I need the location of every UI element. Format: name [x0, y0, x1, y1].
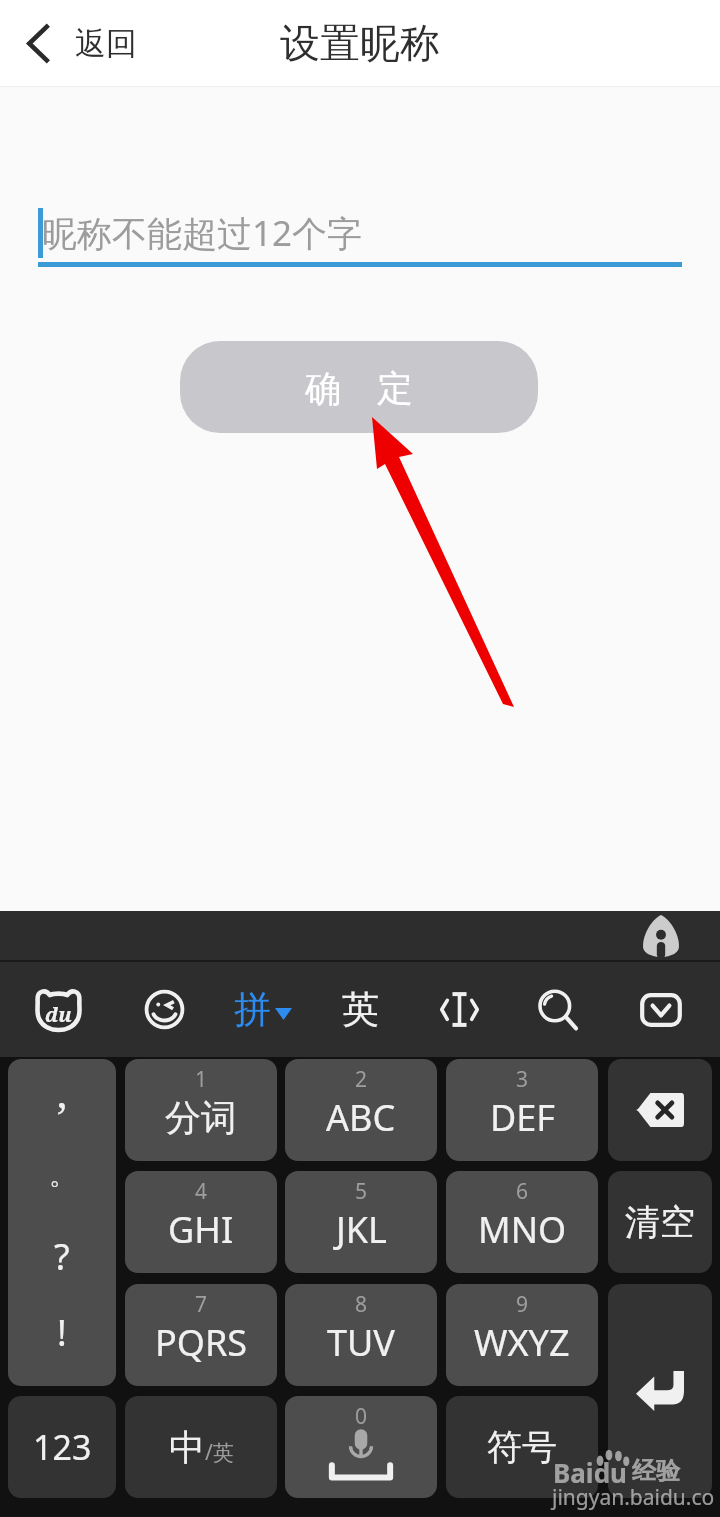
- button[interactable]: Move cursor: [411, 962, 507, 1057]
- staticText: 设置昵称: [280, 18, 440, 68]
- staticText: 确 定: [305, 363, 413, 412]
- staticText: WXYZ: [474, 1318, 570, 1367]
- button[interactable]: 确 定: [180, 341, 538, 433]
- staticText: 清空: [625, 1200, 695, 1244]
- button[interactable]: 1: [125, 1059, 277, 1161]
- staticText: 。: [49, 1159, 75, 1192]
- button[interactable]: 清空: [608, 1171, 712, 1273]
- button[interactable]: 8: [285, 1284, 437, 1386]
- staticText: jingyan.baidu.com: [552, 1483, 720, 1517]
- staticText: ABC: [326, 1093, 396, 1142]
- staticText: du: [45, 1001, 72, 1028]
- button[interactable]: Punctuation: [8, 1059, 116, 1386]
- staticText: 分词: [165, 1095, 237, 1140]
- button[interactable]: 7: [125, 1284, 277, 1386]
- button[interactable]: 英: [312, 962, 408, 1057]
- staticText: 2: [355, 1065, 368, 1094]
- staticText: 7: [195, 1290, 208, 1319]
- staticText: PQRS: [155, 1318, 248, 1367]
- staticText: 返回: [75, 24, 137, 63]
- button[interactable]: 昵称不能超过12个字: [38, 194, 682, 272]
- button[interactable]: Search: [510, 962, 606, 1057]
- button[interactable]: 2: [285, 1059, 437, 1161]
- button[interactable]: 拼: [215, 962, 311, 1057]
- button[interactable]: 符号: [446, 1396, 598, 1498]
- staticText: 经验: [632, 1456, 680, 1486]
- staticText: 符号: [487, 1425, 557, 1469]
- button[interactable]: 4: [125, 1171, 277, 1273]
- button[interactable]: 返回: [0, 0, 155, 87]
- button[interactable]: Enter: [608, 1284, 712, 1498]
- staticText: 4: [195, 1177, 208, 1206]
- button[interactable]: 123: [8, 1396, 116, 1498]
- staticText: 0: [355, 1402, 368, 1431]
- staticText: MNO: [478, 1205, 567, 1254]
- staticText: ?: [54, 1232, 70, 1281]
- staticText: !: [57, 1308, 67, 1357]
- staticText: GHI: [168, 1205, 234, 1254]
- button[interactable]: 3: [446, 1059, 598, 1161]
- button[interactable]: Emoji: [116, 962, 212, 1057]
- staticText: 英: [342, 986, 379, 1033]
- staticText: 6: [516, 1177, 529, 1206]
- button[interactable]: Backspace: [608, 1059, 712, 1161]
- staticText: 中: [169, 1425, 205, 1470]
- staticText: TUV: [327, 1318, 395, 1367]
- staticText: 3: [516, 1065, 529, 1094]
- staticText: 9: [516, 1290, 529, 1319]
- staticText: 1: [195, 1065, 208, 1094]
- button[interactable]: 5: [285, 1171, 437, 1273]
- staticText: 8: [355, 1290, 368, 1319]
- staticText: 123: [33, 1424, 92, 1470]
- button[interactable]: Hide keyboard: [613, 962, 709, 1057]
- button[interactable]: 6: [446, 1171, 598, 1273]
- button[interactable]: 中: [125, 1396, 277, 1498]
- staticText: 昵称不能超过12个字: [42, 209, 363, 257]
- button[interactable]: Space: [285, 1396, 437, 1498]
- staticText: DEF: [490, 1093, 555, 1142]
- staticText: ,: [57, 1065, 67, 1119]
- staticText: /英: [205, 1438, 234, 1467]
- staticText: JKL: [336, 1205, 387, 1254]
- staticText: 拼: [234, 986, 271, 1033]
- button[interactable]: Baidu input logo: [10, 962, 106, 1057]
- button[interactable]: 9: [446, 1284, 598, 1386]
- button[interactable]: AI assistant: [642, 915, 680, 957]
- staticText: 5: [355, 1177, 368, 1206]
- staticText: Baidu: [553, 1455, 627, 1490]
